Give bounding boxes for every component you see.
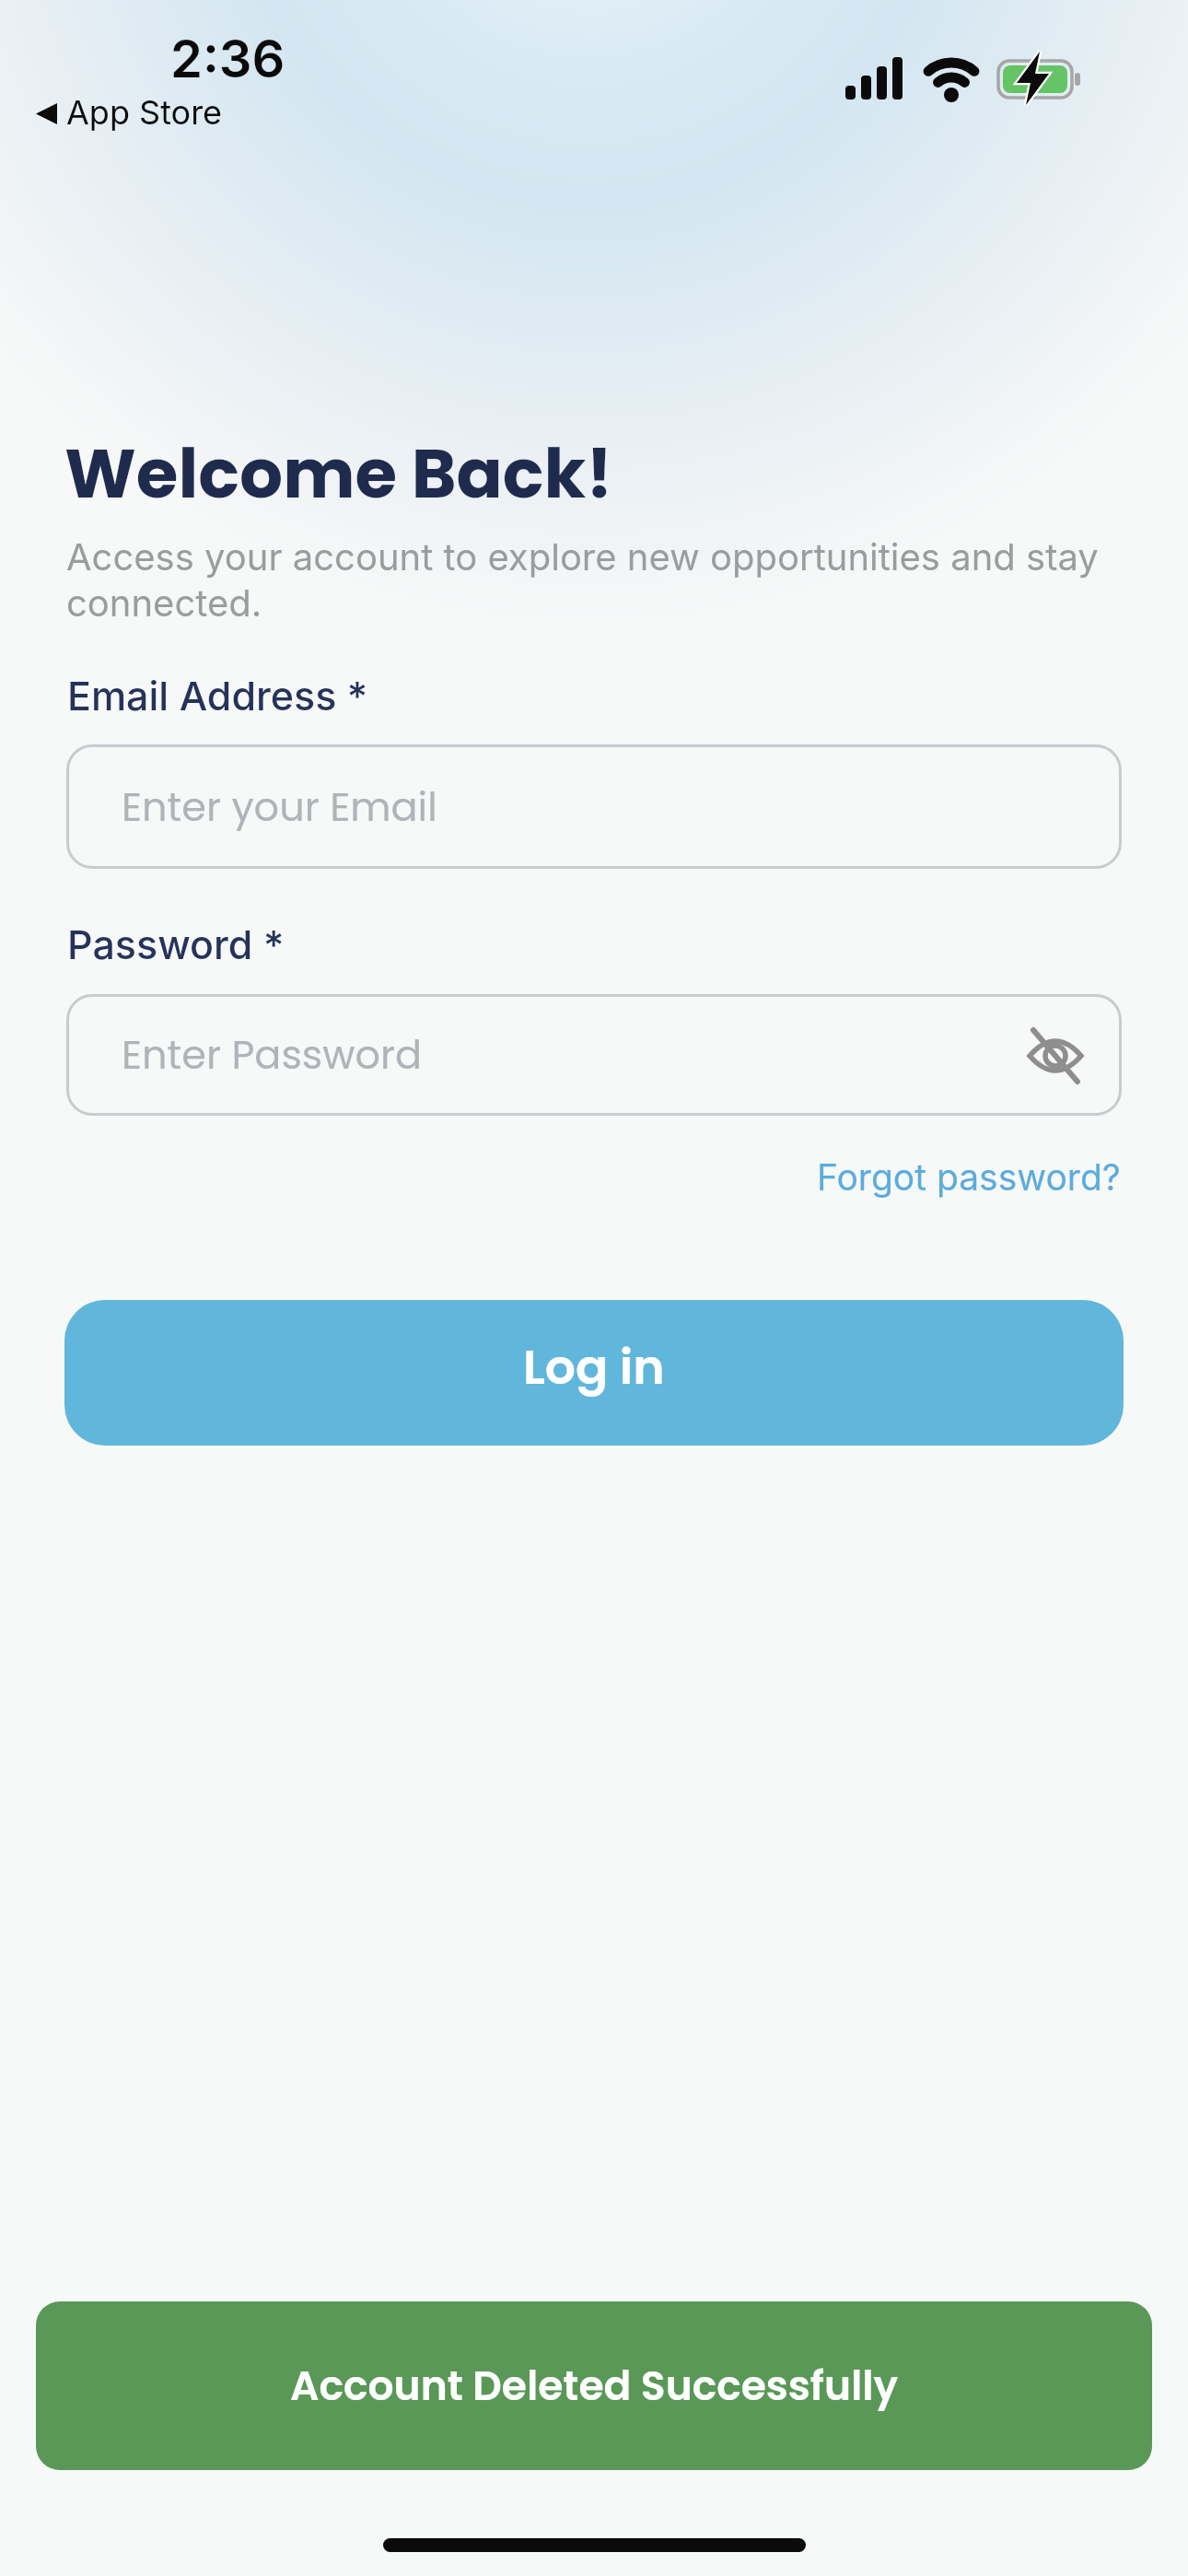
staticText: Enter your Email xyxy=(122,779,437,835)
staticText: connected. xyxy=(66,580,262,625)
staticText: Enter Password xyxy=(122,1027,423,1083)
staticText: Access your account to explore new oppor… xyxy=(66,534,1099,579)
staticText: Password * xyxy=(67,920,285,968)
staticText: Email Address * xyxy=(67,672,368,720)
staticText: App Store xyxy=(66,92,223,133)
staticText: Account Deleted Successfully xyxy=(290,2358,899,2415)
staticText: Log in xyxy=(523,1333,665,1400)
staticText: Forgot password? xyxy=(817,1155,1121,1199)
staticText: Welcome Back! xyxy=(64,426,613,521)
staticText: 2:36 xyxy=(170,28,285,90)
